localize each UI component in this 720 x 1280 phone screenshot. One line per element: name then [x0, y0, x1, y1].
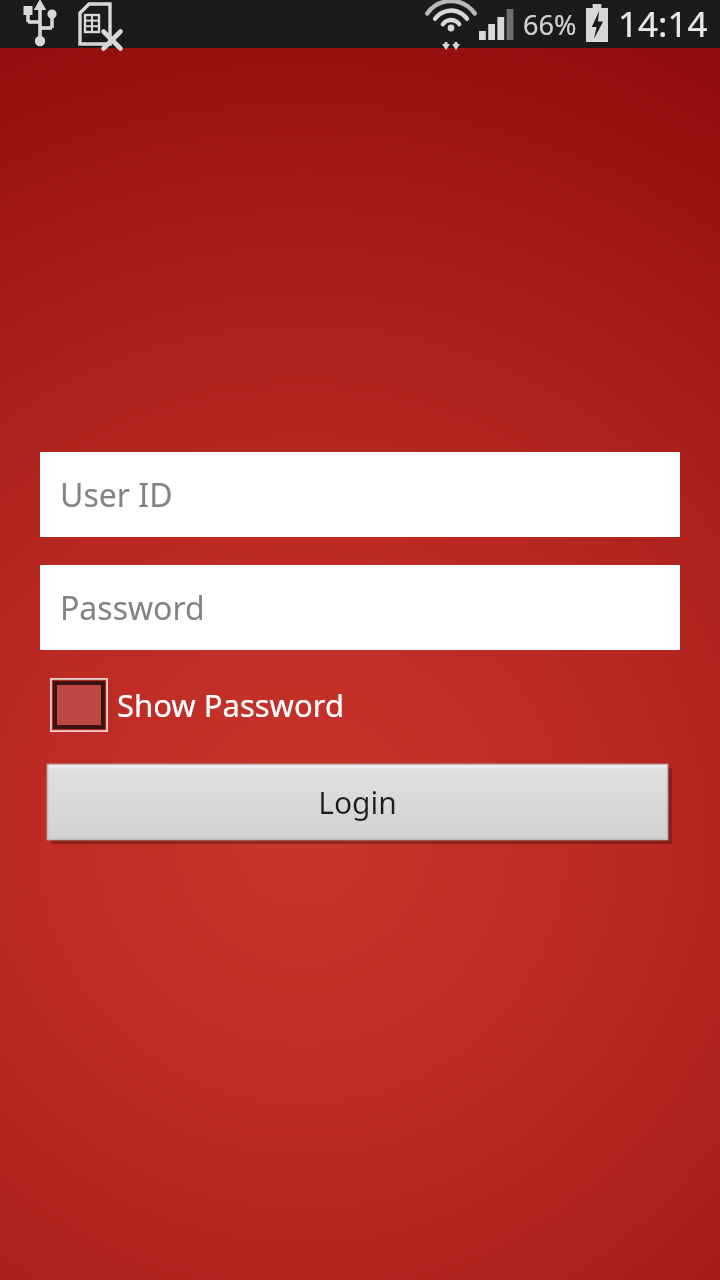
button[interactable]: Login	[47, 764, 672, 844]
staticText: 66%	[523, 6, 577, 43]
button[interactable]: Show Password	[48, 676, 344, 734]
staticText: Show Password	[117, 684, 344, 726]
staticText: Login	[318, 782, 397, 823]
staticText: 14:14	[618, 0, 708, 48]
button[interactable]: Password	[40, 565, 680, 650]
button[interactable]: User ID	[40, 452, 680, 537]
staticText: Password	[60, 586, 205, 630]
staticText: User ID	[60, 473, 173, 517]
